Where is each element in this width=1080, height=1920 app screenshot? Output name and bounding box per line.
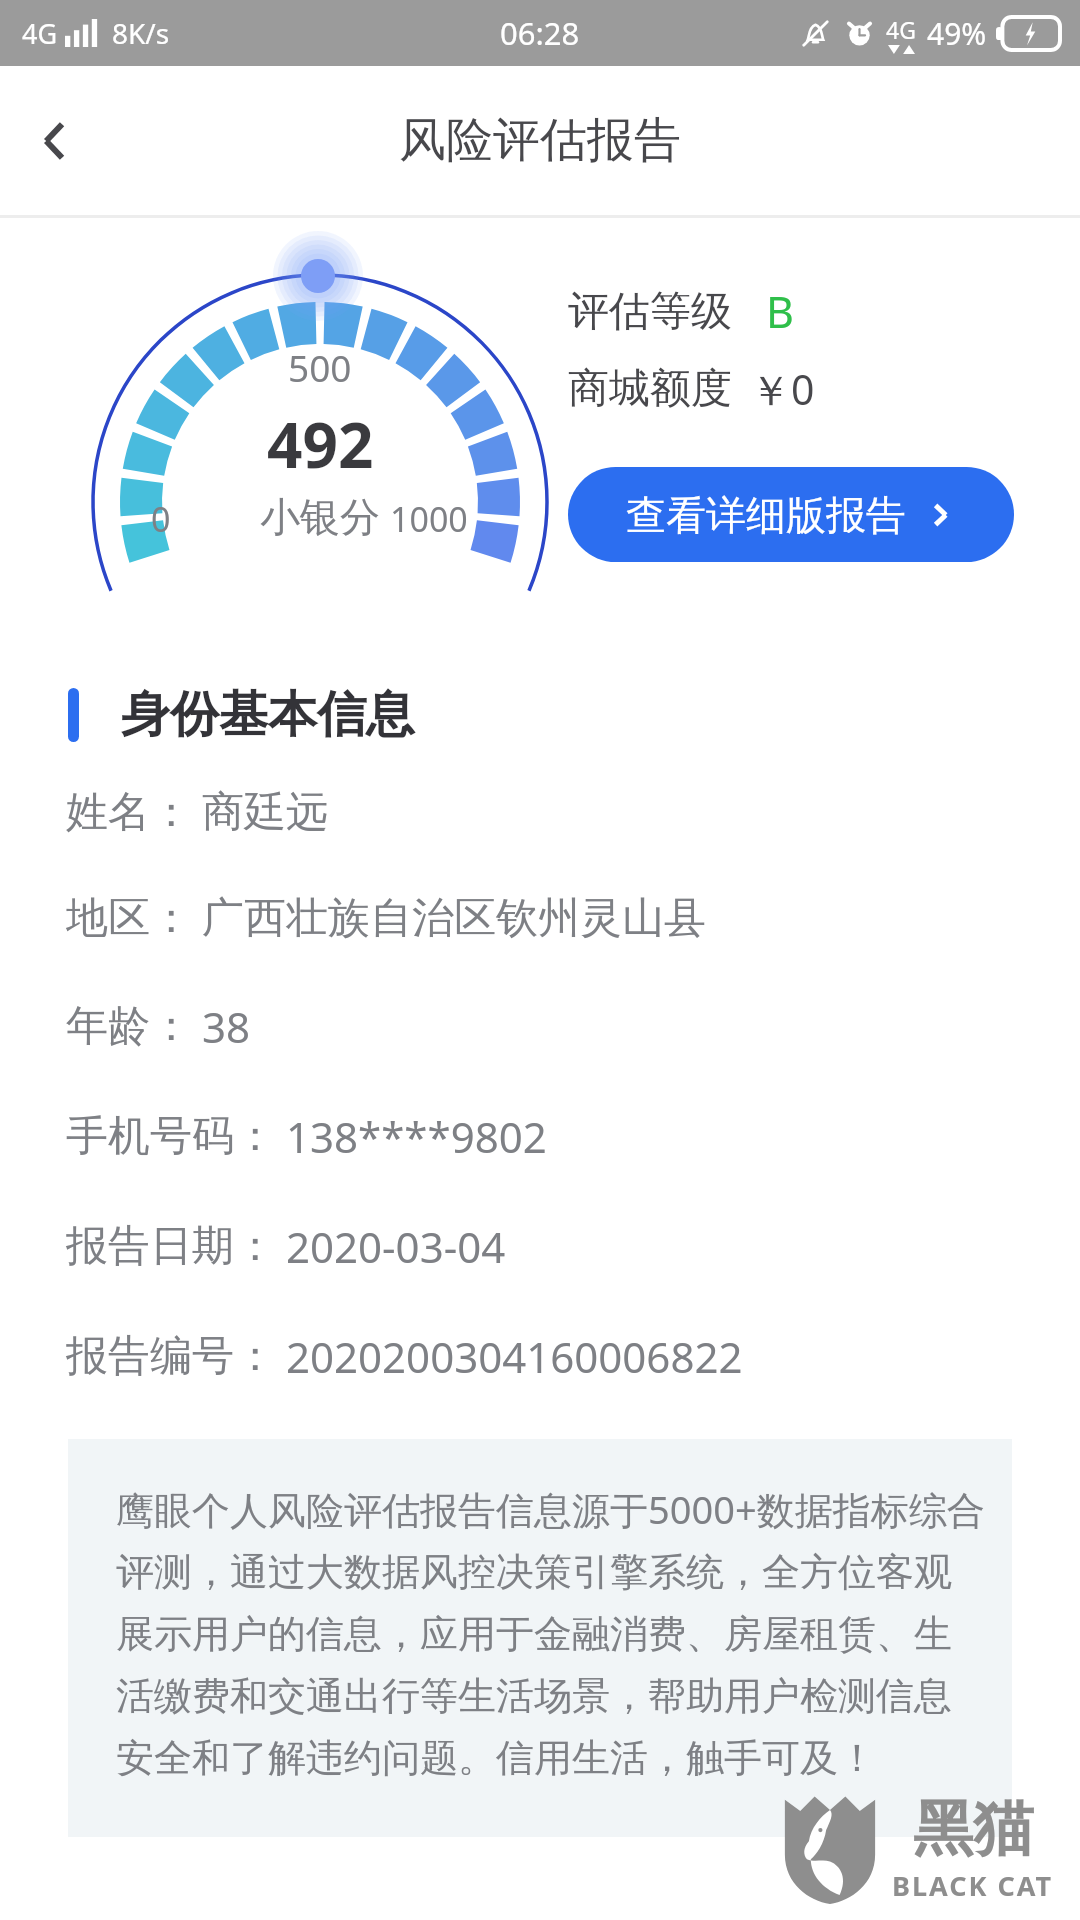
staticText: 广西壮族自治区钦州灵山县	[202, 892, 706, 945]
staticText: 小银分	[260, 492, 380, 542]
staticText: 评估等级	[568, 286, 732, 338]
staticText: 商城额度	[568, 363, 732, 415]
staticText: 492	[267, 402, 374, 486]
staticText: 风险评估报告	[399, 111, 681, 170]
staticText: 查看详细版报告	[626, 490, 906, 540]
staticText: 500	[288, 342, 352, 392]
staticText: 商廷远	[202, 786, 328, 839]
staticText: 鹰眼个人风险评估报告信息源于5000+数据指标综合评测，通过大数据风控决策引擎系…	[116, 1483, 986, 1783]
staticText: 38	[202, 998, 251, 1055]
button[interactable]: 查看详细版报告	[568, 467, 1014, 562]
staticText: 黑猫	[913, 1791, 1033, 1867]
staticText: B	[766, 282, 794, 341]
staticText: 手机号码：	[66, 1110, 276, 1163]
staticText: 138****9802	[286, 1108, 547, 1165]
staticText: 报告编号：	[66, 1330, 276, 1383]
staticText: 身份基本信息	[121, 684, 415, 746]
staticText: 0	[151, 496, 171, 542]
staticText: 06:28	[500, 12, 580, 54]
button[interactable]: Back	[0, 86, 110, 196]
staticText: 地区：	[66, 892, 192, 945]
staticText: 2020-03-04	[286, 1218, 506, 1275]
staticText: 1000	[390, 496, 468, 542]
staticText: 姓名：	[66, 786, 192, 839]
staticText: BLACK CAT	[892, 1867, 1054, 1904]
staticText: 4G	[22, 15, 58, 52]
staticText: 2020200304160006822	[286, 1328, 743, 1385]
staticText: 报告日期：	[66, 1220, 276, 1273]
staticText: 4G	[886, 14, 916, 45]
staticText: ￥0	[750, 361, 815, 417]
staticText: 8K/s	[112, 14, 170, 52]
staticText: 年龄：	[66, 1000, 192, 1053]
staticText: 49%	[927, 13, 987, 54]
